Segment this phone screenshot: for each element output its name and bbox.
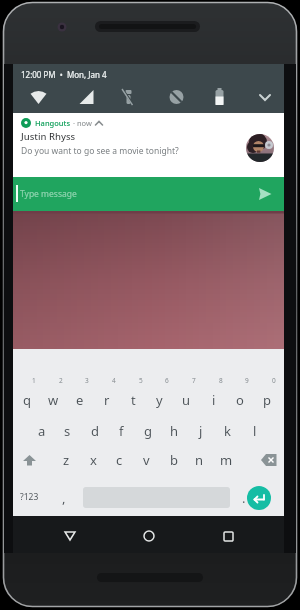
staticText: m (220, 451, 233, 469)
staticText: l (253, 422, 257, 440)
staticText: i (212, 391, 216, 409)
button[interactable]: w (40, 385, 67, 415)
button[interactable] (134, 521, 164, 551)
staticText: h (170, 422, 179, 440)
button[interactable]: c (106, 445, 133, 475)
staticText: r (104, 391, 110, 409)
button[interactable]: , (51, 483, 76, 513)
button[interactable]: p (253, 385, 280, 415)
staticText: k (224, 422, 231, 440)
staticText: g (144, 422, 152, 440)
staticText: 7 (192, 376, 196, 385)
staticText: 8 (219, 376, 223, 385)
staticText: 3 (85, 376, 89, 385)
button[interactable]: j (187, 416, 214, 446)
button[interactable]: m (213, 445, 240, 475)
staticText: 2 (59, 376, 63, 385)
staticText: v (143, 451, 150, 469)
button[interactable]: Type message (13, 177, 284, 211)
button[interactable]: n (186, 445, 213, 475)
staticText: q (23, 391, 31, 409)
staticText: Justin Rhyss (21, 130, 76, 143)
staticText: z (63, 451, 70, 469)
button[interactable] (55, 521, 85, 551)
button[interactable]: r (93, 385, 120, 415)
button[interactable]: t (120, 385, 147, 415)
staticText: · now (71, 118, 94, 128)
button[interactable]: a (28, 416, 55, 446)
button[interactable]: e (66, 385, 93, 415)
staticText: . (242, 489, 246, 507)
button[interactable]: x (80, 445, 107, 475)
staticText: Type message (20, 188, 77, 200)
staticText: 4 (112, 376, 116, 385)
button[interactable]: ?123 (13, 482, 46, 512)
button[interactable]: Hangouts (13, 113, 284, 177)
staticText: x (90, 451, 97, 469)
button[interactable] (213, 521, 243, 551)
staticText: n (195, 451, 204, 469)
button[interactable]: v (133, 445, 160, 475)
staticText: b (170, 451, 178, 469)
button[interactable] (247, 486, 271, 510)
staticText: 0 (272, 376, 276, 385)
staticText: p (263, 391, 271, 409)
staticText: c (116, 451, 123, 469)
staticText: 6 (165, 376, 169, 385)
staticText: , (62, 489, 66, 507)
staticText: w (48, 391, 59, 409)
staticText: e (76, 391, 84, 409)
button[interactable]: . (231, 483, 256, 513)
button[interactable] (254, 445, 284, 475)
staticText: 1 (32, 376, 36, 385)
staticText: u (182, 391, 191, 409)
button[interactable]: z (53, 445, 80, 475)
staticText: Do you want to go see a movie tonight? (21, 145, 179, 157)
button[interactable] (257, 186, 274, 203)
button[interactable]: f (108, 416, 135, 446)
staticText: s (64, 422, 71, 440)
staticText: a (38, 422, 46, 440)
staticText: y (156, 391, 163, 409)
staticText: Hangouts (35, 118, 71, 128)
staticText: 12:00 PM • Mon, Jan 4 (21, 69, 107, 80)
button[interactable]: s (54, 416, 81, 446)
button[interactable]: l (241, 416, 268, 446)
button[interactable]: g (134, 416, 161, 446)
button[interactable] (15, 445, 44, 475)
button[interactable]: y (146, 385, 173, 415)
staticText: t (131, 391, 136, 409)
staticText: 9 (245, 376, 249, 385)
button[interactable]: i (200, 385, 227, 415)
staticText: 5 (139, 376, 143, 385)
staticText: ?123 (20, 491, 39, 503)
button[interactable]: q (13, 385, 40, 415)
staticText: d (91, 422, 99, 440)
button[interactable] (253, 84, 277, 110)
staticText: f (119, 422, 124, 440)
button[interactable]: u (173, 385, 200, 415)
staticText: o (236, 391, 244, 409)
button[interactable]: b (160, 445, 187, 475)
button[interactable]: d (81, 416, 108, 446)
button[interactable]: k (214, 416, 241, 446)
button[interactable]: h (161, 416, 188, 446)
staticText: j (199, 422, 203, 440)
button[interactable]: o (226, 385, 253, 415)
